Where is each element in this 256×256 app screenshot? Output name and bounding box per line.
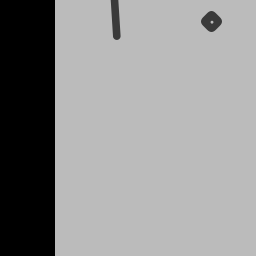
button[interactable]: Token xyxy=(201,11,222,32)
button[interactable]: Marker xyxy=(112,0,119,40)
